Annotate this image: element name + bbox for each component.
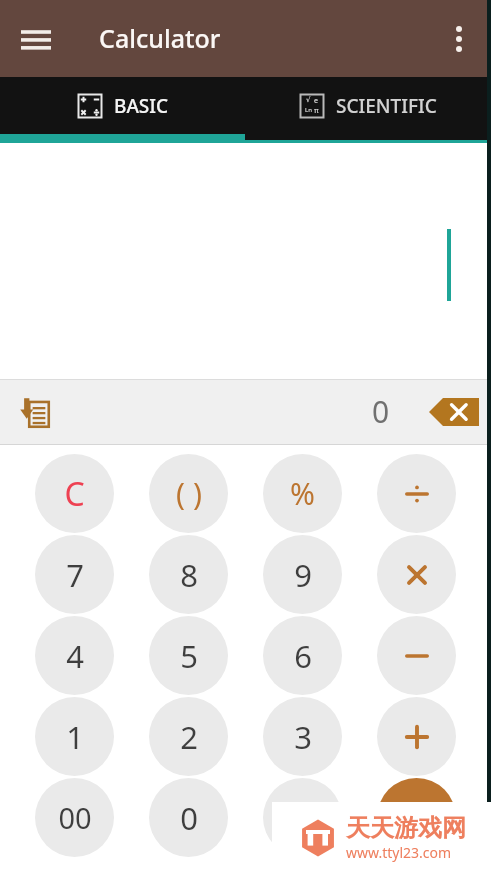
button[interactable]: C — [35, 454, 114, 533]
staticText: . — [298, 797, 307, 839]
staticText: 5 — [180, 635, 198, 677]
staticText: √ — [306, 96, 311, 104]
staticText: 00 — [58, 798, 92, 837]
button[interactable]: √ — [245, 77, 491, 134]
button[interactable]: 1 — [35, 697, 114, 776]
button[interactable]: % — [263, 454, 342, 533]
staticText: Ln — [305, 106, 312, 114]
button[interactable]: 0 — [149, 778, 228, 857]
button[interactable]: 2 — [149, 697, 228, 776]
button[interactable]: 9 — [263, 535, 342, 614]
button[interactable]: Plus — [377, 697, 456, 776]
staticText: C — [64, 472, 85, 516]
staticText: e — [314, 96, 318, 106]
staticText: 天天游戏网 — [346, 813, 466, 843]
button[interactable]: ( ) — [149, 454, 228, 533]
staticText: 6 — [294, 635, 312, 677]
button[interactable]: BASIC — [0, 77, 245, 134]
staticText: 1 — [66, 716, 84, 758]
staticText: 8 — [180, 554, 198, 596]
staticText: BASIC — [114, 93, 169, 119]
button[interactable]: 6 — [263, 616, 342, 695]
staticText: 0 — [180, 797, 198, 839]
staticText: 2 — [180, 716, 198, 758]
staticText: % — [290, 473, 315, 514]
button[interactable]: Save to history — [8, 386, 60, 438]
staticText: π — [314, 106, 319, 116]
staticText: ( ) — [176, 473, 202, 514]
button[interactable]: Divide — [377, 454, 456, 533]
staticText: Calculator — [99, 21, 221, 55]
button[interactable]: Minus — [377, 616, 456, 695]
button[interactable]: Equals — [377, 778, 456, 857]
button[interactable]: 5 — [149, 616, 228, 695]
button[interactable]: Open navigation drawer — [8, 11, 64, 67]
staticText: 7 — [66, 554, 84, 596]
button[interactable]: Multiply — [377, 535, 456, 614]
button[interactable]: Backspace — [423, 386, 485, 438]
button[interactable]: 8 — [149, 535, 228, 614]
staticText: SCIENTIFIC — [336, 93, 437, 119]
button[interactable]: More options — [433, 13, 485, 65]
button[interactable]: 4 — [35, 616, 114, 695]
button[interactable]: . — [263, 778, 342, 857]
button[interactable] — [0, 143, 491, 379]
button[interactable]: 00 — [35, 778, 114, 857]
button[interactable]: 3 — [263, 697, 342, 776]
staticText: 3 — [294, 716, 312, 758]
staticText: 0 — [372, 391, 390, 432]
staticText: 4 — [66, 635, 84, 677]
staticText: 9 — [294, 554, 312, 596]
button[interactable]: 7 — [35, 535, 114, 614]
staticText: www.ttyl23.com — [346, 843, 452, 862]
